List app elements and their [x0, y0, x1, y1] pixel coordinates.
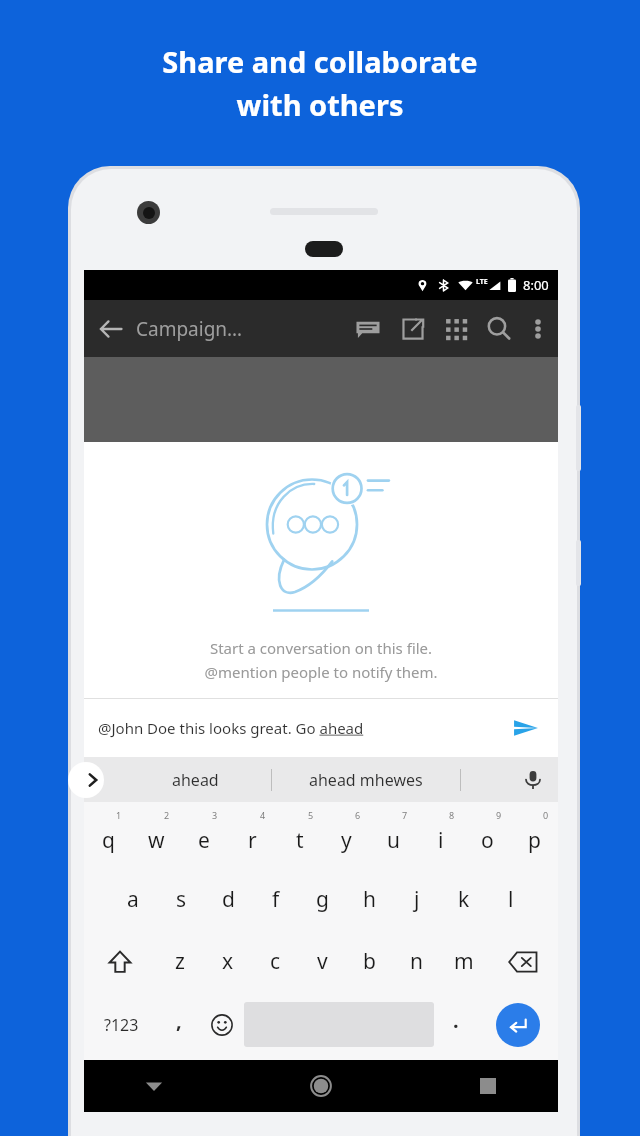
button[interactable]: More options	[524, 315, 552, 343]
button[interactable]: 3	[180, 806, 228, 868]
staticText: m	[454, 947, 474, 976]
button[interactable]: Voice input	[516, 763, 550, 797]
staticText: a	[127, 885, 139, 914]
staticText: .	[453, 1007, 459, 1034]
staticText: @mention people to notify them.	[84, 662, 558, 682]
button[interactable]: .	[434, 993, 477, 1056]
button[interactable]: ahead mhewes	[272, 757, 460, 802]
button[interactable]: ahead	[120, 757, 271, 802]
button[interactable]: 8	[417, 806, 464, 868]
staticText: b	[363, 947, 376, 976]
button[interactable]: Open in new	[396, 312, 430, 346]
staticText: s	[176, 885, 187, 914]
staticText: 0	[543, 809, 549, 821]
button[interactable]: Apps	[440, 313, 472, 345]
button[interactable]: a	[109, 868, 157, 930]
button[interactable]: 1	[84, 806, 132, 868]
button[interactable]: 0	[511, 806, 558, 868]
staticText: ,	[176, 1007, 182, 1034]
button[interactable]: g	[299, 868, 346, 930]
button[interactable]: m	[440, 930, 487, 993]
button[interactable]: d	[205, 868, 252, 930]
staticText: 2	[164, 809, 170, 821]
staticText: 7	[402, 809, 408, 821]
button[interactable]: 4	[228, 806, 276, 868]
button[interactable]: Backspace	[487, 930, 558, 993]
staticText: Start a conversation on this file.	[84, 638, 558, 658]
staticText: f	[272, 885, 280, 914]
staticText: c	[270, 947, 281, 976]
staticText: i	[438, 826, 444, 855]
staticText: 8	[449, 809, 455, 821]
staticText: l	[508, 885, 514, 914]
button[interactable]: c	[252, 930, 299, 993]
staticText: j	[414, 885, 420, 914]
staticText: u	[387, 826, 400, 855]
button[interactable]: Back	[132, 1064, 176, 1108]
button[interactable]: ?123	[84, 993, 159, 1056]
button[interactable]: j	[393, 868, 440, 930]
button[interactable]: Back	[90, 308, 132, 350]
button[interactable]: Shift	[84, 930, 156, 993]
button[interactable]: f	[252, 868, 299, 930]
button[interactable]: z	[156, 930, 204, 993]
staticText: r	[248, 826, 257, 855]
button[interactable]: 2	[132, 806, 180, 868]
staticText: h	[363, 885, 376, 914]
staticText: k	[458, 885, 470, 914]
button[interactable]: ,	[159, 993, 199, 1056]
button[interactable]: v	[299, 930, 346, 993]
button[interactable]: k	[440, 868, 487, 930]
button[interactable]: Send	[504, 706, 548, 750]
staticText: p	[528, 826, 541, 855]
staticText: 5	[308, 809, 314, 821]
button[interactable]: Recent apps	[466, 1064, 510, 1108]
button[interactable]: 6	[323, 806, 370, 868]
button[interactable]: h	[346, 868, 393, 930]
button[interactable]: 7	[370, 806, 417, 868]
staticText: t	[296, 826, 304, 855]
button[interactable]: l	[487, 868, 534, 930]
button[interactable]: 9	[464, 806, 511, 868]
staticText: @John Doe this looks great. Go ahead	[98, 718, 364, 738]
button[interactable]: Expand suggestions	[68, 762, 104, 798]
button[interactable]: Home	[299, 1064, 343, 1108]
staticText: 1	[116, 809, 122, 821]
button[interactable]: Emoji	[199, 993, 244, 1056]
button[interactable]: Enter	[477, 993, 558, 1056]
staticText: 9	[496, 809, 502, 821]
staticText: o	[481, 826, 494, 855]
button[interactable]: s	[157, 868, 205, 930]
staticText: ahead	[172, 769, 219, 791]
button[interactable]: x	[204, 930, 252, 993]
staticText: z	[175, 947, 185, 976]
button[interactable]: @John Doe this looks great. Go ahead	[98, 718, 504, 738]
staticText: 3	[212, 809, 218, 821]
button[interactable]: 5	[276, 806, 323, 868]
staticText: with others	[0, 85, 640, 124]
staticText: g	[316, 885, 329, 914]
staticText: w	[148, 826, 165, 855]
staticText: Campaign…	[136, 316, 243, 342]
staticText: x	[222, 947, 234, 976]
staticText: LTE	[476, 277, 488, 287]
button[interactable]: n	[393, 930, 440, 993]
staticText: d	[222, 885, 235, 914]
staticText: ?123	[104, 1014, 139, 1036]
staticText: 6	[355, 809, 361, 821]
staticText: Share and collaborate	[0, 42, 640, 81]
staticText: 4	[260, 809, 266, 821]
staticText: e	[198, 826, 210, 855]
staticText: q	[102, 826, 115, 855]
button[interactable]: b	[346, 930, 393, 993]
staticText: 8:00	[523, 276, 549, 294]
staticText: y	[341, 826, 352, 855]
button[interactable]: Comments	[350, 311, 386, 347]
staticText: n	[410, 947, 423, 976]
button[interactable]: Search	[482, 312, 516, 346]
staticText: v	[317, 947, 328, 976]
staticText: ahead mhewes	[309, 769, 423, 791]
